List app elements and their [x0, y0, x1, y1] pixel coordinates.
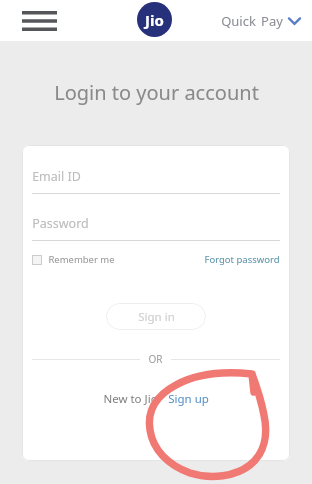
button[interactable]: Jio home	[137, 2, 172, 37]
button[interactable]: Password	[32, 215, 280, 241]
staticText: New to Jio?	[103, 391, 163, 407]
staticText: Jio	[145, 10, 164, 30]
staticText: Sign in	[138, 309, 175, 325]
staticText: OR	[148, 352, 163, 366]
staticText: Email ID	[32, 168, 81, 185]
button[interactable]: Remember me	[32, 253, 115, 266]
button[interactable]: Quick	[221, 12, 300, 30]
staticText: Sign up	[168, 391, 209, 407]
staticText: Login to your account	[54, 79, 259, 106]
staticText: Pay	[261, 12, 283, 30]
button[interactable]: Sign in	[106, 303, 206, 330]
staticText: Forgot password	[204, 253, 280, 266]
button[interactable]: Email ID	[32, 168, 280, 194]
button[interactable]: Sign up	[168, 391, 209, 407]
staticText: Remember me	[48, 253, 115, 266]
staticText: Quick	[221, 12, 256, 30]
staticText: Password	[32, 215, 89, 232]
button[interactable]: Forgot password	[204, 253, 280, 266]
button[interactable]: Open navigation menu	[16, 5, 62, 37]
